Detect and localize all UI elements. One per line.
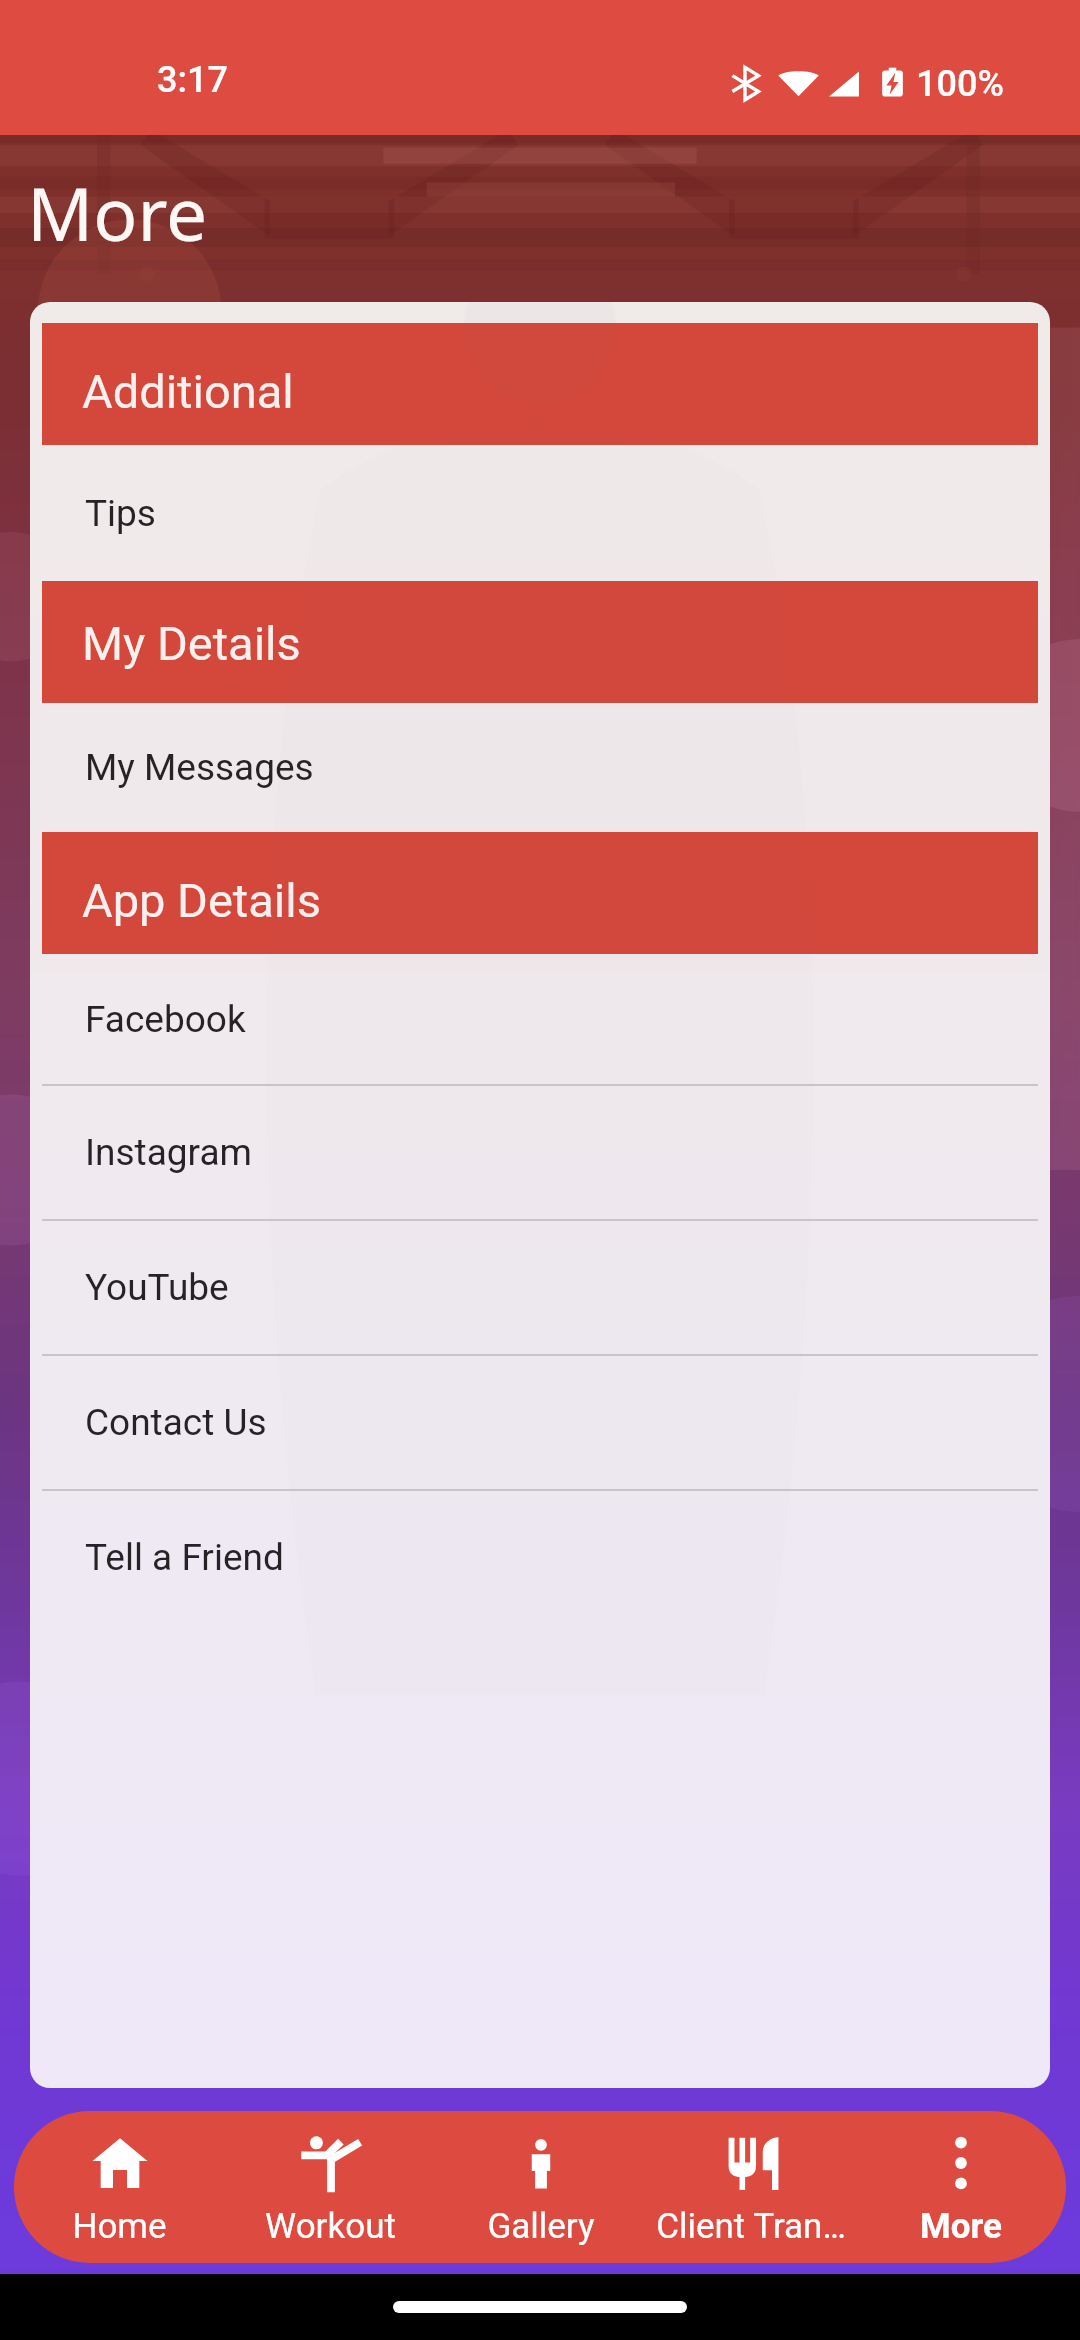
button[interactable]: Client Transformations xyxy=(646,2111,856,2263)
staticText: My Messages xyxy=(85,746,314,789)
staticText: App Details xyxy=(82,873,321,928)
button[interactable]: Home xyxy=(14,2111,225,2263)
other: More xyxy=(933,2135,989,2191)
staticText: My Details xyxy=(82,616,301,671)
other: Wi-Fi xyxy=(775,60,822,107)
other: Workout xyxy=(300,2132,362,2194)
other: Battery xyxy=(869,60,916,107)
button[interactable]: Contact Us xyxy=(30,1356,1050,1489)
other: Home xyxy=(92,2135,148,2191)
button[interactable]: Tell a Friend xyxy=(30,1491,1050,1624)
staticText: Instagram xyxy=(85,1131,252,1174)
staticText: Workout xyxy=(265,2206,396,2247)
button[interactable]: App Details xyxy=(42,832,1038,954)
staticText: Contact Us xyxy=(85,1401,267,1444)
staticText: Tell a Friend xyxy=(85,1536,284,1579)
staticText: More xyxy=(27,163,208,262)
staticText: 100% xyxy=(916,63,1004,105)
button[interactable]: More xyxy=(856,2111,1066,2263)
staticText: Client Tran… xyxy=(656,2206,846,2247)
button[interactable]: Workout xyxy=(225,2111,436,2263)
other: Mobile signal xyxy=(822,62,866,106)
staticText: Home xyxy=(72,2206,167,2247)
button[interactable]: Tips xyxy=(30,445,1050,581)
staticText: YouTube xyxy=(85,1266,229,1309)
staticText: Tips xyxy=(85,492,156,535)
other: Gallery xyxy=(513,2135,569,2191)
staticText: Additional xyxy=(82,364,294,419)
other: Client Transformations xyxy=(723,2135,779,2191)
other: Bluetooth xyxy=(724,63,766,105)
staticText: Facebook xyxy=(85,998,246,1041)
button[interactable]: My Messages xyxy=(30,703,1050,832)
button[interactable]: Additional xyxy=(42,323,1038,445)
staticText: More xyxy=(920,2206,1002,2247)
button[interactable]: My Details xyxy=(42,581,1038,703)
button[interactable]: YouTube xyxy=(30,1221,1050,1354)
button[interactable]: Facebook xyxy=(30,954,1050,1084)
staticText: Gallery xyxy=(487,2206,595,2247)
button[interactable]: Instagram xyxy=(30,1086,1050,1219)
button[interactable]: Gallery xyxy=(436,2111,646,2263)
staticText: 3:17 xyxy=(157,59,228,101)
